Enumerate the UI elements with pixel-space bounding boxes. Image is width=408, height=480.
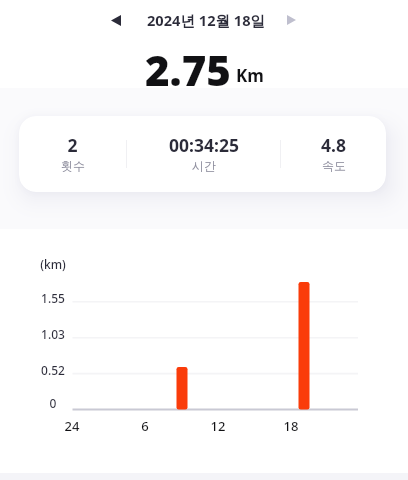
staticText: 2.75 bbox=[145, 41, 231, 98]
staticText: 24 bbox=[52, 417, 92, 435]
button[interactable]: 4.8 bbox=[281, 133, 386, 173]
staticText: 18 bbox=[271, 417, 311, 435]
staticText: 2024년 12월 18일 bbox=[147, 10, 266, 30]
button[interactable]: 2 bbox=[19, 133, 126, 173]
button[interactable]: Previous day bbox=[103, 7, 129, 33]
staticText: 1.55 bbox=[23, 290, 83, 306]
staticText: 4.8 bbox=[321, 133, 346, 157]
staticText: 횟수 bbox=[61, 158, 85, 173]
button[interactable]: Next day bbox=[278, 7, 304, 33]
staticText: 0 bbox=[23, 395, 83, 411]
staticText: (km) bbox=[23, 256, 83, 272]
staticText: 시간 bbox=[192, 158, 216, 173]
button[interactable]: 00:34:25 bbox=[127, 133, 280, 173]
staticText: 00:34:25 bbox=[169, 133, 239, 157]
staticText: 12 bbox=[198, 417, 238, 435]
staticText: Km bbox=[236, 64, 264, 87]
staticText: 2 bbox=[67, 133, 78, 157]
staticText: 0.52 bbox=[23, 362, 83, 378]
staticText: 속도 bbox=[322, 158, 346, 173]
staticText: 1.03 bbox=[23, 326, 83, 342]
staticText: 6 bbox=[125, 417, 165, 435]
